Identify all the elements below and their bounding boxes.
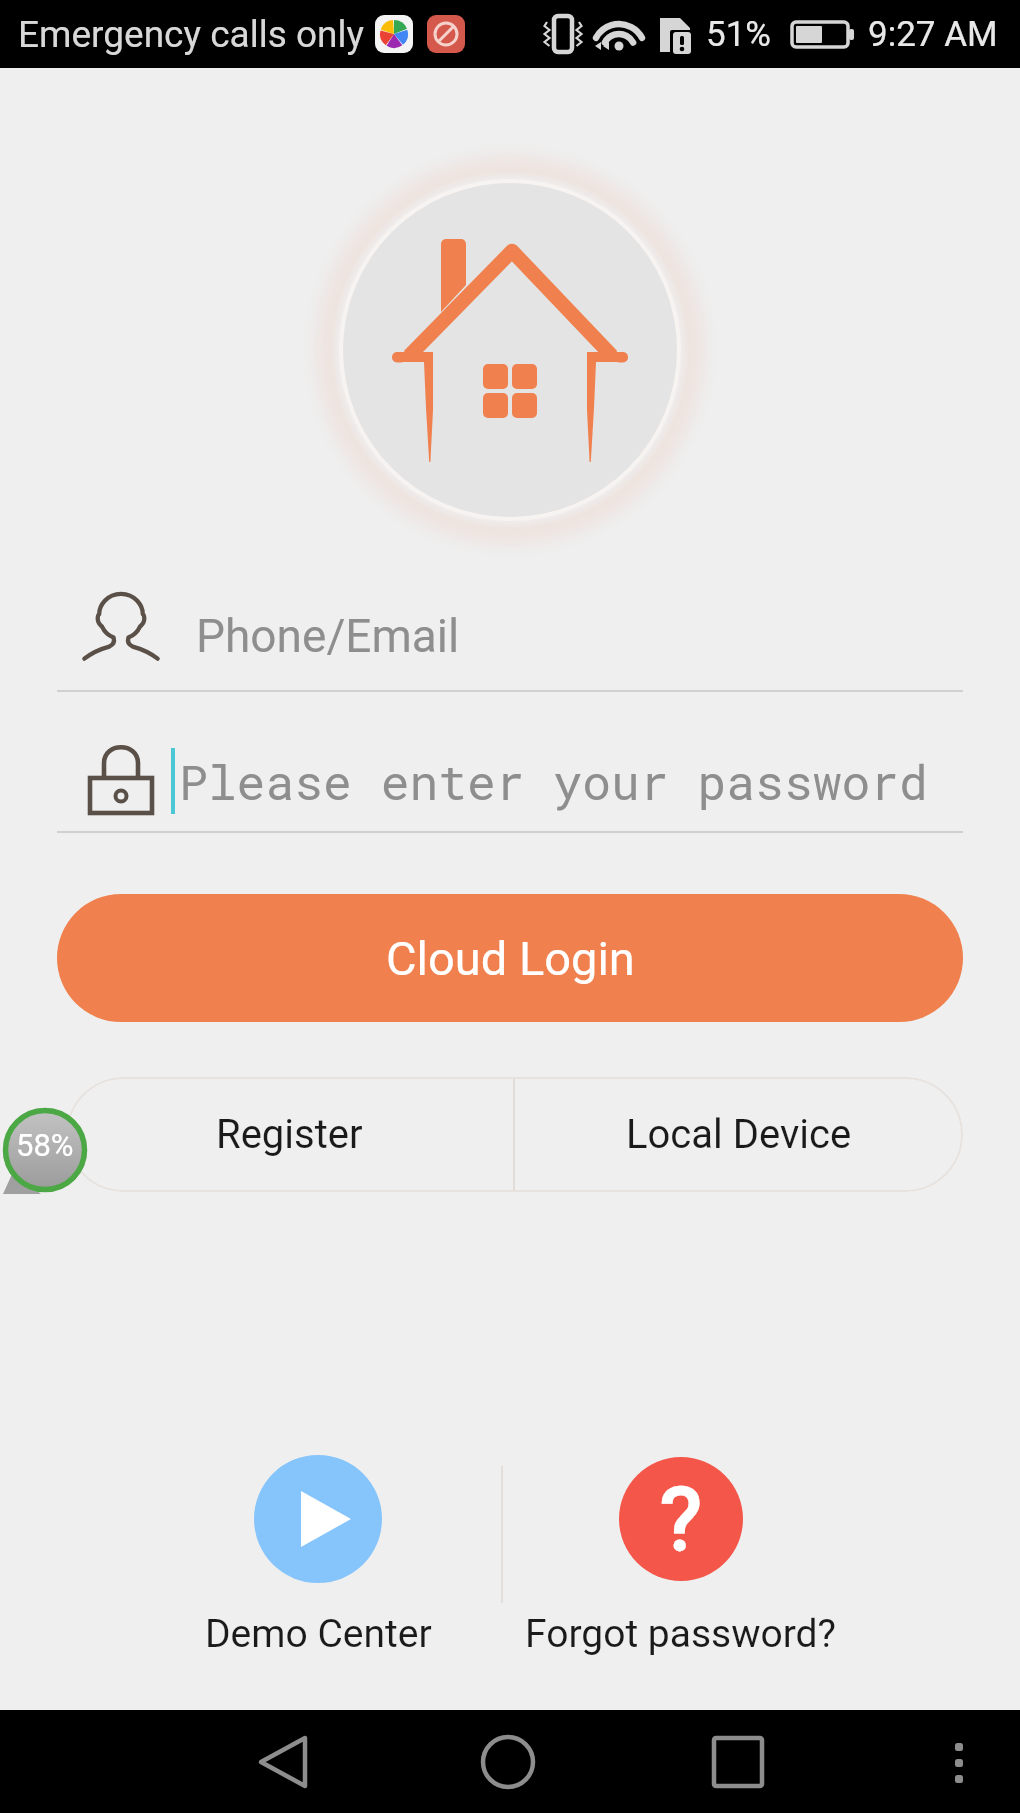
staticText: 9:27 AM <box>868 14 998 55</box>
button[interactable]: More options <box>890 1710 980 1813</box>
staticText: Demo Center <box>205 1611 432 1657</box>
staticText: 58% <box>16 1127 74 1163</box>
staticText: Register <box>216 1111 363 1158</box>
button[interactable]: Phone/Email <box>57 571 963 683</box>
staticText: 51% <box>706 14 771 55</box>
staticText: Cloud Login <box>386 931 635 986</box>
button[interactable]: Recent apps <box>688 1710 788 1813</box>
staticText: Phone/Email <box>196 609 460 663</box>
staticText: Emergency calls only <box>18 13 364 56</box>
staticText: Forgot password? <box>525 1611 837 1657</box>
button[interactable]: Back <box>235 1710 335 1813</box>
button[interactable]: Home <box>458 1710 558 1813</box>
button[interactable]: Please enter your password <box>57 726 963 836</box>
button[interactable]: Register <box>66 1077 513 1192</box>
staticText: Please enter your password <box>179 750 928 813</box>
button[interactable]: ? <box>425 1455 937 1657</box>
button[interactable]: Local Device <box>515 1077 963 1192</box>
button[interactable]: Demo Center <box>62 1455 574 1657</box>
staticText: Local Device <box>626 1111 852 1158</box>
button[interactable]: Cloud Login <box>57 894 963 1022</box>
staticText: ? <box>660 1467 702 1570</box>
